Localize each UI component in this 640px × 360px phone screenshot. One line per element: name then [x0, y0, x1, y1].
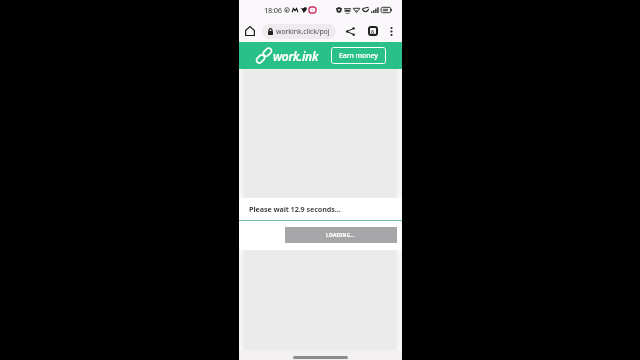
staticText: Earn money	[339, 51, 378, 61]
button[interactable]: LOADING...	[285, 227, 397, 243]
button[interactable]: More options	[385, 25, 397, 37]
staticText: 18:06	[264, 5, 282, 15]
staticText: work.ink	[273, 48, 319, 64]
button[interactable]: Earn money	[331, 47, 386, 64]
button[interactable]: workink.click/poj	[262, 24, 336, 39]
staticText: LOADING...	[326, 232, 356, 239]
staticText: Please wait 12.9 seconds...	[249, 204, 341, 214]
button[interactable]: Tabs	[366, 24, 380, 38]
staticText: workink.click/poj	[276, 27, 330, 37]
button[interactable]: Home	[243, 24, 257, 38]
staticText: 6	[371, 28, 375, 35]
button[interactable]: Share	[343, 24, 357, 38]
